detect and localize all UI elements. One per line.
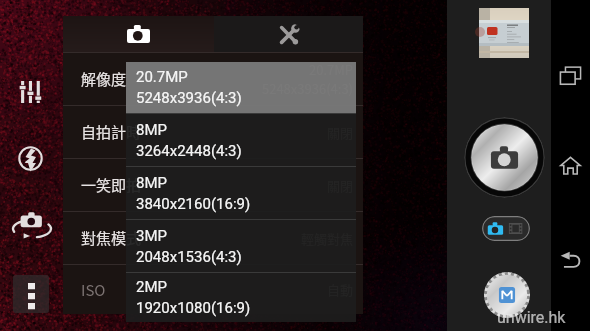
staticText: unwire.hk <box>497 308 566 327</box>
staticText: 2MP <box>136 278 167 296</box>
staticText: 3264x2448(4:3) <box>136 142 242 160</box>
button[interactable]: 一笑即拍 <box>63 159 363 211</box>
button[interactable]: Flash mode <box>12 140 48 176</box>
staticText: 5248x3936(4:3) <box>136 89 242 107</box>
button[interactable]: 2MP <box>126 273 356 322</box>
staticText: 8MP <box>136 174 167 192</box>
staticText: 8MP <box>136 121 167 139</box>
button[interactable]: Tools tab <box>214 16 363 52</box>
staticText: 20.7MP <box>136 68 188 86</box>
button[interactable]: Photo or video mode <box>482 216 530 241</box>
button[interactable]: Back <box>551 242 590 278</box>
button[interactable]: 20.7MP <box>126 62 356 113</box>
button[interactable]: More options <box>13 275 49 313</box>
staticText: 3840x2160(16:9) <box>136 195 251 213</box>
button[interactable]: Shooting mode <box>484 272 530 318</box>
button[interactable]: Shutter <box>464 117 545 198</box>
staticText: 自拍計時 <box>81 121 142 143</box>
button[interactable]: Recents <box>551 57 590 93</box>
staticText: 一笑即拍 <box>81 174 142 196</box>
staticText: 對焦模式 <box>81 227 142 249</box>
staticText: ISO <box>81 279 106 301</box>
button[interactable]: 3MP <box>126 220 356 272</box>
staticText: 2048x1536(4:3) <box>136 248 242 266</box>
button[interactable]: Home <box>551 147 590 183</box>
button[interactable]: Settings <box>12 74 48 110</box>
button[interactable]: 解像度 <box>63 53 363 105</box>
button[interactable]: Camera settings tab <box>63 16 214 52</box>
staticText: 解像度 <box>81 68 127 90</box>
button[interactable]: Last photo <box>479 8 529 58</box>
button[interactable]: 8MP <box>126 167 356 219</box>
staticText: 3MP <box>136 227 167 245</box>
staticText: 1920x1080(16:9) <box>136 299 251 317</box>
button[interactable]: 對焦模式 <box>63 212 363 264</box>
button[interactable]: Switch camera <box>12 204 52 244</box>
staticText: 20.7MP <box>308 60 353 79</box>
button[interactable]: 自拍計時 <box>63 106 363 158</box>
button[interactable]: ISO <box>63 265 363 314</box>
button[interactable]: 8MP <box>126 114 356 166</box>
